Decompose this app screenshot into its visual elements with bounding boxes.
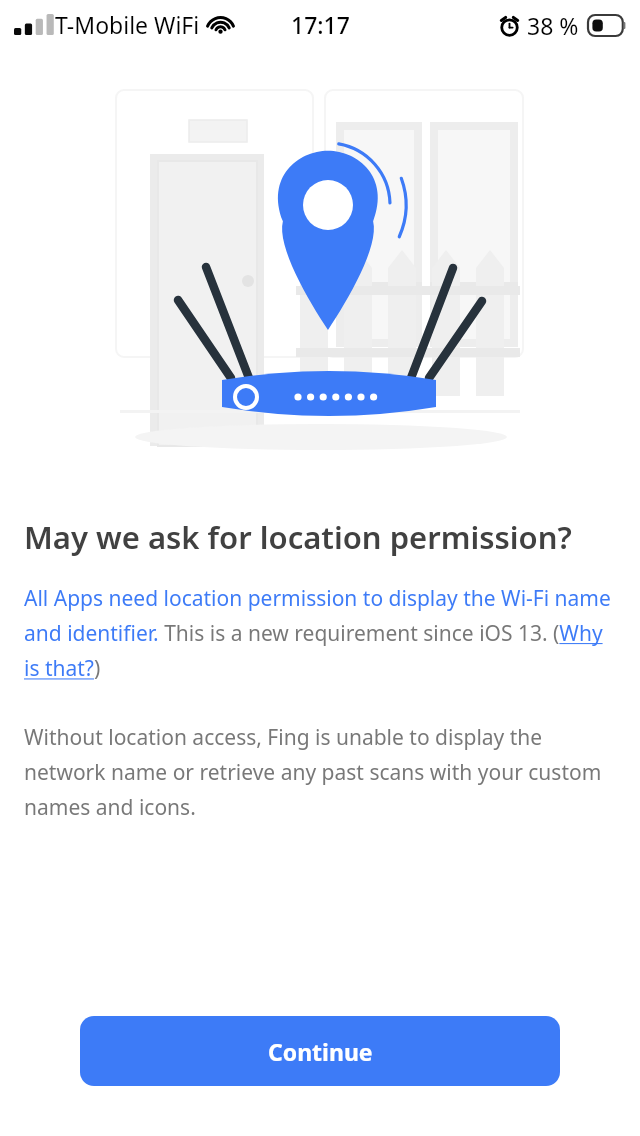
staticText: Without location access, Fing is unable … <box>24 723 616 822</box>
button[interactable]: Continue <box>80 1016 560 1086</box>
staticText: 17:17 <box>291 9 350 40</box>
staticText: All Apps need location permission to dis… <box>24 584 616 683</box>
staticText: Continue <box>268 1036 373 1067</box>
staticText: May we ask for location permission? <box>24 516 572 558</box>
staticText: T-Mobile WiFi <box>55 9 200 40</box>
staticText: 38 % <box>527 10 579 41</box>
